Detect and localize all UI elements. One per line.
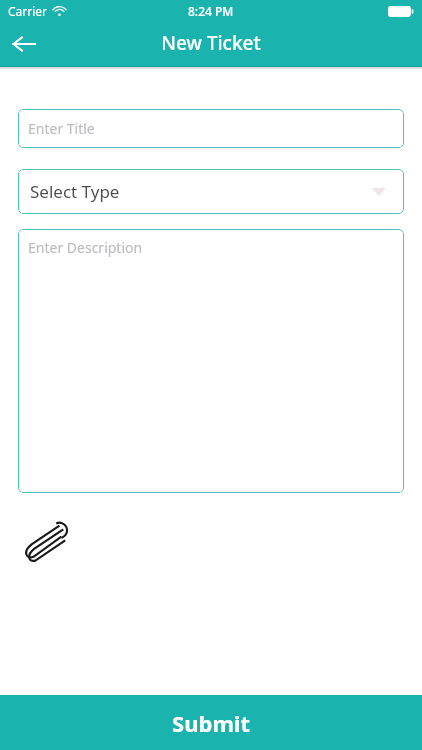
button[interactable]: Enter Description (18, 229, 404, 493)
button[interactable]: Select Type (18, 169, 404, 214)
staticText: Enter Title (28, 119, 95, 138)
staticText: Submit (172, 708, 250, 738)
button[interactable]: Back (0, 22, 48, 66)
staticText: Carrier (8, 3, 48, 19)
button[interactable]: Submit (0, 695, 422, 750)
staticText: 8:24 PM (188, 3, 234, 19)
button[interactable]: Attach file (18, 511, 74, 567)
button[interactable]: Enter Title (18, 109, 404, 148)
staticText: Enter Description (28, 238, 143, 257)
staticText: New Ticket (161, 30, 261, 56)
staticText: Select Type (30, 180, 120, 203)
